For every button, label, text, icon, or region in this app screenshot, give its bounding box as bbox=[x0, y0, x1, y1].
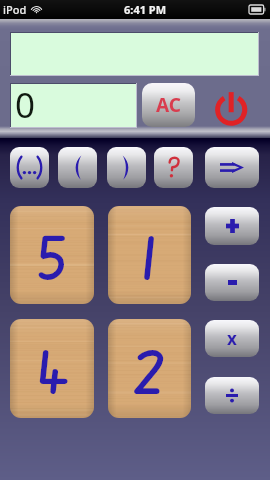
button[interactable]: Power bbox=[211, 83, 250, 131]
staticText: 6:41 PM bbox=[124, 2, 167, 17]
button[interactable]: Divide bbox=[205, 377, 259, 414]
button[interactable]: 5 bbox=[10, 206, 94, 304]
button[interactable]: Close parenthesis bbox=[107, 147, 146, 188]
staticText: 0 bbox=[15, 81, 36, 129]
staticText: x bbox=[227, 327, 237, 350]
staticText: ? bbox=[167, 151, 180, 184]
staticText: AC bbox=[156, 92, 181, 118]
staticText: 5 bbox=[38, 216, 66, 294]
staticText: 2 bbox=[136, 330, 164, 408]
button[interactable]: Minus bbox=[205, 264, 259, 301]
button[interactable]: Multiply bbox=[205, 320, 259, 357]
button[interactable]: AC bbox=[142, 83, 195, 127]
button[interactable]: 2 bbox=[108, 319, 191, 418]
staticText: 4 bbox=[38, 330, 67, 408]
button[interactable]: Evaluate bbox=[205, 147, 259, 188]
staticText: 1 bbox=[140, 216, 159, 294]
button[interactable]: 1 bbox=[108, 206, 191, 304]
button[interactable]: Open parenthesis bbox=[58, 147, 97, 188]
button[interactable]: Plus bbox=[205, 207, 259, 245]
staticText: iPod bbox=[3, 2, 27, 17]
button[interactable]: Ellipsis in parentheses bbox=[10, 147, 49, 188]
button[interactable]: Help bbox=[154, 147, 193, 188]
button[interactable]: 4 bbox=[10, 319, 94, 418]
